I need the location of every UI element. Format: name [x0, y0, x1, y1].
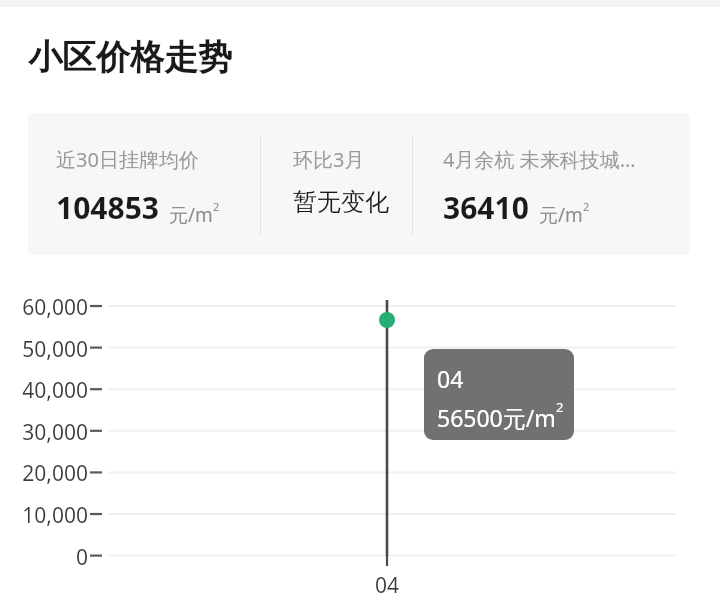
staticText: 04 — [437, 363, 464, 394]
staticText: 环比3月 — [293, 146, 365, 173]
staticText: 2 — [213, 199, 220, 214]
staticText: 60,000 — [0, 293, 88, 322]
staticText: 元/m — [169, 202, 213, 228]
staticText: 40,000 — [0, 376, 88, 405]
staticText: 4月余杭 未来科技城... — [443, 146, 636, 173]
staticText: 50,000 — [0, 335, 88, 364]
staticText: 近30日挂牌均价 — [56, 146, 199, 173]
staticText: 2 — [583, 199, 590, 214]
button[interactable]: 近30日挂牌均价 — [28, 113, 690, 255]
button[interactable]: Data point tooltip — [424, 349, 574, 440]
staticText: 2 — [556, 398, 564, 416]
staticText: 10,000 — [0, 501, 88, 530]
staticText: 36410 — [443, 187, 529, 228]
staticText: 暂无变化 — [293, 187, 389, 217]
staticText: 0 — [0, 543, 88, 572]
staticText: 56500元/m — [437, 402, 556, 433]
staticText: 104853 — [56, 187, 159, 228]
staticText: 小区价格走势 — [28, 36, 232, 79]
staticText: 20,000 — [0, 459, 88, 488]
staticText: 元/m — [539, 202, 583, 228]
staticText: 30,000 — [0, 418, 88, 447]
staticText: 04 — [347, 571, 427, 600]
